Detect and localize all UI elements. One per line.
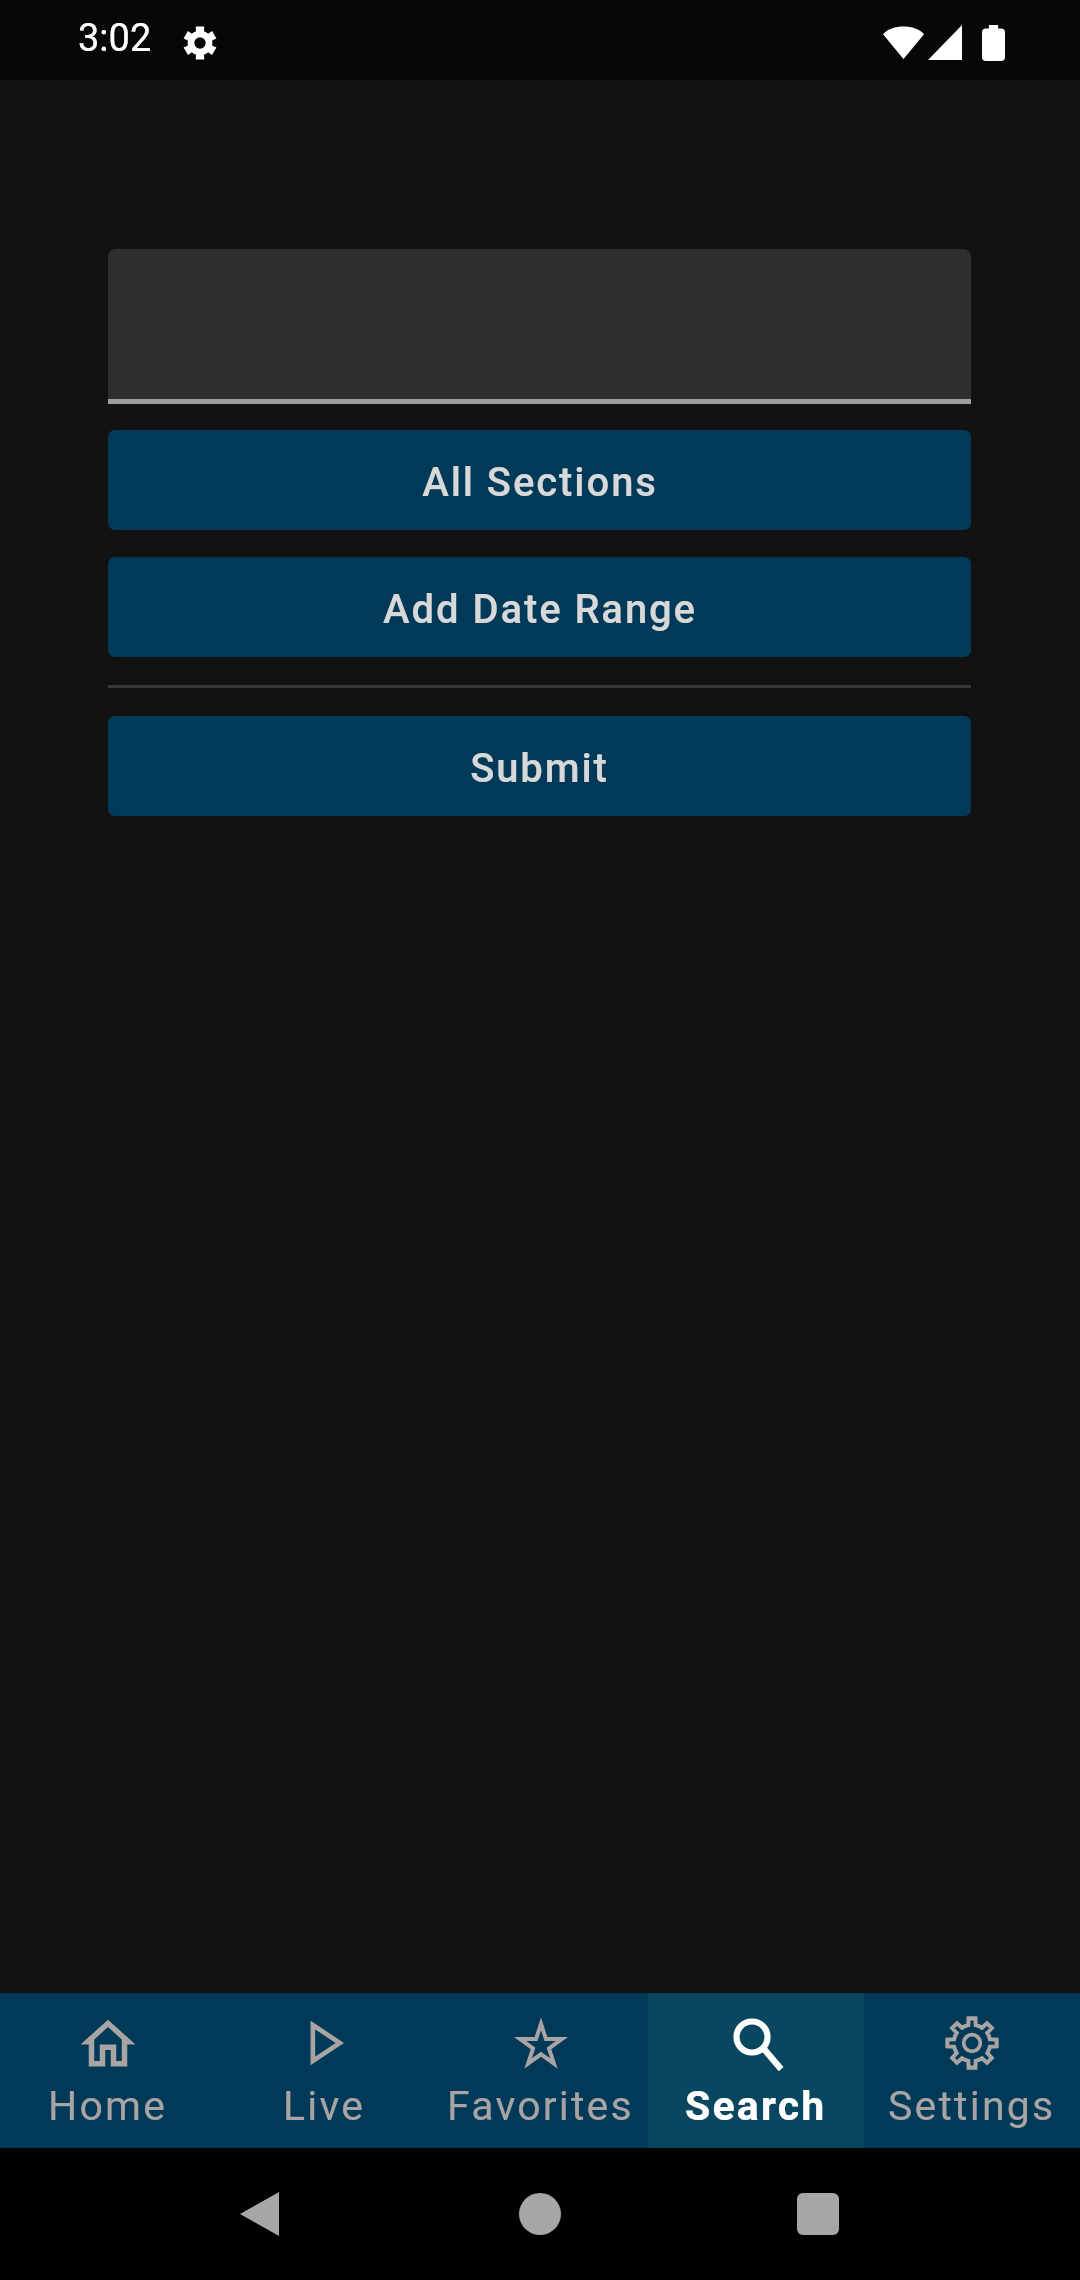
other: Settings [183,26,217,60]
button[interactable]: Submit [108,716,971,816]
button[interactable]: Home [0,1993,216,2148]
staticText: 3:02 [78,16,152,61]
staticText: Submit [470,745,609,792]
other: System navigation [0,2148,1080,2280]
button[interactable]: Settings [864,1993,1080,2148]
button[interactable]: Live [216,1993,432,2148]
button[interactable]: All Sections [108,430,971,530]
staticText: Search [685,2082,827,2130]
staticText: Settings [888,2082,1056,2130]
button[interactable]: Add Date Range [108,557,971,657]
staticText: Favorites [447,2082,634,2130]
staticText: Home [48,2082,168,2130]
staticText: All Sections [422,459,658,506]
button[interactable]: Search [648,1993,864,2148]
staticText: Live [283,2082,366,2130]
button[interactable]: Favorites [432,1993,648,2148]
staticText: Add Date Range [383,586,697,633]
